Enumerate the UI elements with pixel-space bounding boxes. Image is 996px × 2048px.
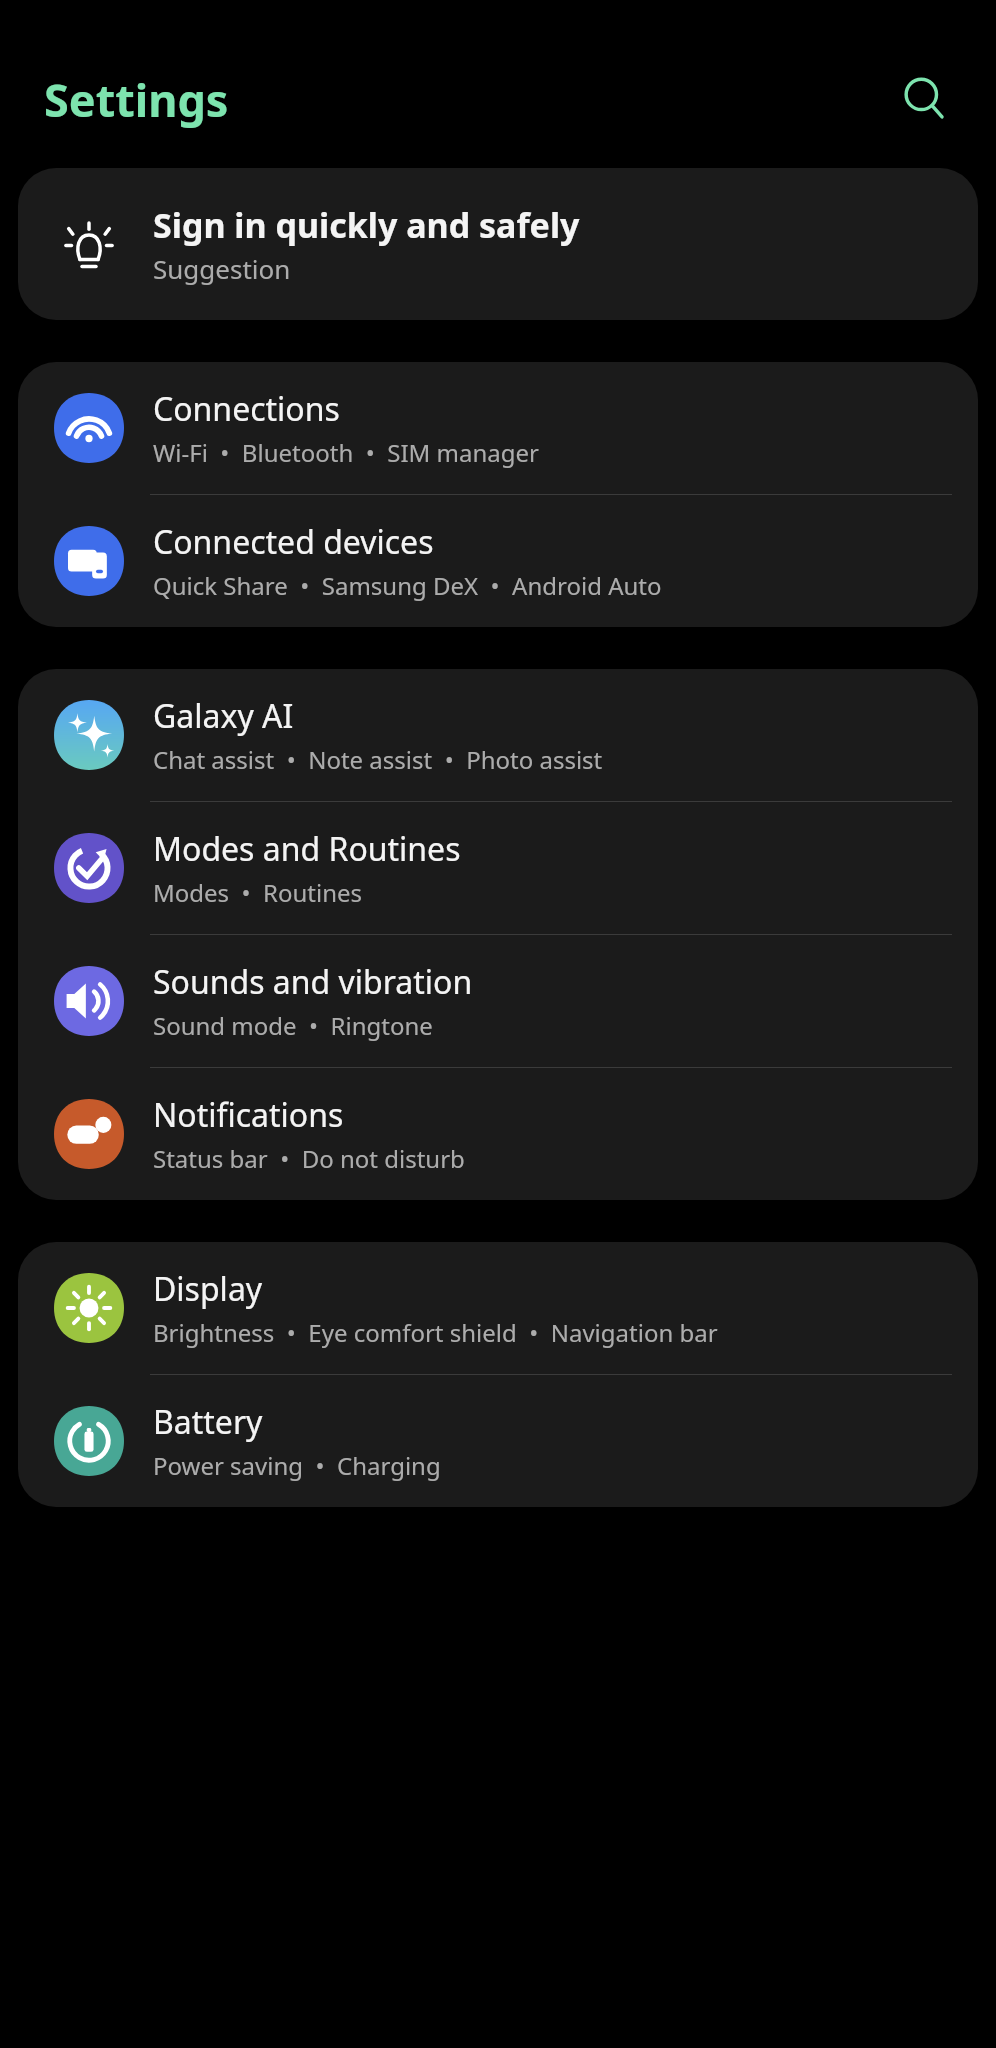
button[interactable]: Notifications [18, 1068, 978, 1200]
staticText: Galaxy AI [153, 694, 294, 738]
staticText: Brightness • Eye comfort shield • Naviga… [153, 1316, 718, 1349]
button[interactable]: Galaxy AI [18, 669, 978, 801]
button[interactable]: Connected devices [18, 495, 978, 627]
staticText: Sound mode • Ringtone [153, 1009, 433, 1042]
staticText: Connected devices [153, 520, 434, 564]
button[interactable]: Search [892, 66, 958, 132]
button[interactable]: Display [18, 1242, 978, 1374]
staticText: Chat assist • Note assist • Photo assist [153, 743, 603, 776]
staticText: Sign in quickly and safely [153, 202, 580, 248]
staticText: Suggestion [153, 251, 291, 286]
button[interactable]: Connections [18, 362, 978, 494]
staticText: Connections [153, 387, 340, 431]
staticText: Power saving • Charging [153, 1449, 441, 1482]
button[interactable]: Sounds and vibration [18, 935, 978, 1067]
staticText: Quick Share • Samsung DeX • Android Auto [153, 569, 662, 602]
staticText: Settings [44, 69, 229, 130]
staticText: Display [153, 1267, 263, 1311]
button[interactable]: Sign in quickly and safely [18, 168, 978, 320]
staticText: Sounds and vibration [153, 960, 473, 1004]
staticText: Battery [153, 1400, 263, 1444]
staticText: Status bar • Do not disturb [153, 1142, 465, 1175]
staticText: Wi-Fi • Bluetooth • SIM manager [153, 436, 539, 469]
staticText: Modes • Routines [153, 876, 363, 909]
button[interactable]: Battery [18, 1375, 978, 1507]
staticText: Modes and Routines [153, 827, 461, 871]
staticText: Notifications [153, 1093, 344, 1137]
button[interactable]: Modes and Routines [18, 802, 978, 934]
